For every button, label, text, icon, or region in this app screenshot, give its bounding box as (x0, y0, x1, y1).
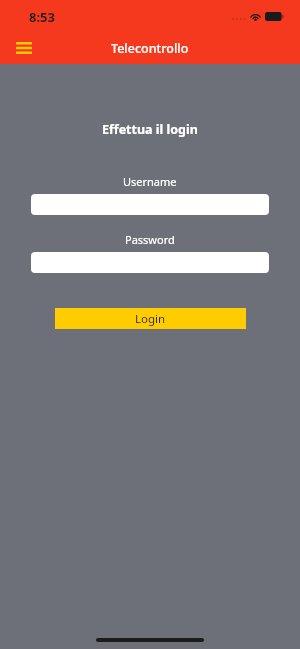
staticText: Telecontrollo (111, 40, 189, 57)
staticText: Effettua il login (102, 121, 198, 138)
button[interactable]: Login (55, 308, 246, 329)
button[interactable]: Password input field (31, 252, 269, 273)
staticText: Username (123, 174, 177, 189)
staticText: 8:53 (29, 8, 55, 26)
button[interactable]: Open navigation menu (10, 37, 38, 59)
button[interactable]: Username input field (31, 194, 269, 215)
staticText: Password (125, 232, 175, 247)
staticText: Login (135, 311, 166, 327)
